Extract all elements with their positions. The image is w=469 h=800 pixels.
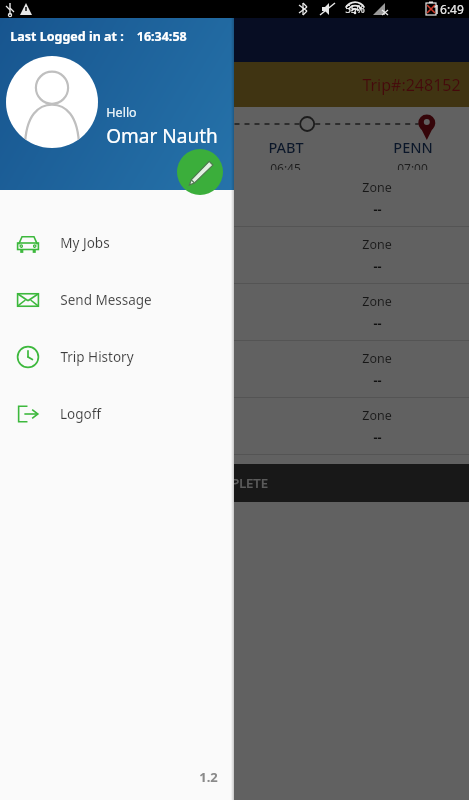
- button[interactable]: Trip History: [0, 328, 234, 385]
- staticText: 1.2: [199, 768, 218, 786]
- staticText: 55%: [345, 2, 365, 16]
- staticText: Actual Arrival Time: [87, 293, 198, 310]
- staticText: Zone: [362, 179, 392, 196]
- button[interactable]: Actual Arrival Time: [0, 227, 469, 284]
- button[interactable]: Actual Arrival Time: [0, 398, 469, 455]
- staticText: --: [373, 429, 382, 446]
- staticText: Zone: [362, 350, 392, 367]
- staticText: Zone: [362, 236, 392, 253]
- staticText: Omar Nauth: [106, 123, 218, 149]
- staticText: --: [373, 201, 382, 218]
- staticText: Actual Arrival Time: [87, 350, 198, 367]
- staticText: Actual Arrival Time: [87, 179, 198, 196]
- staticText: Send Message: [60, 291, 152, 309]
- staticText: Zone: [362, 293, 392, 310]
- staticText: PABT: [268, 137, 304, 157]
- staticText: Actual Arrival Time: [87, 236, 198, 253]
- staticText: --: [373, 372, 382, 389]
- button[interactable]: Send Message: [0, 271, 234, 328]
- staticText: Logoff: [60, 405, 101, 423]
- button[interactable]: Edit profile: [177, 149, 223, 195]
- button[interactable]: COMPLETE: [0, 464, 469, 502]
- button[interactable]: [0, 18, 469, 800]
- staticText: Current Job: [56, 29, 147, 52]
- button[interactable]: Logoff: [0, 385, 234, 442]
- staticText: Hello: [106, 104, 137, 121]
- button[interactable]: Open navigation drawer: [8, 20, 48, 60]
- staticText: My Jobs: [60, 234, 110, 252]
- button[interactable]: Actual Arrival Time: [0, 170, 469, 227]
- button[interactable]: Actual Arrival Time: [0, 341, 469, 398]
- staticText: Actual Arrival Time: [87, 407, 198, 424]
- staticText: PENN: [393, 137, 433, 157]
- staticText: LGP: [143, 137, 170, 157]
- staticText: --: [373, 258, 382, 275]
- staticText: 06:45: [270, 160, 301, 170]
- staticText: 16:49: [433, 1, 464, 17]
- staticText: Last Logged in at : 16:34:58: [10, 28, 187, 45]
- staticText: 07:00: [397, 160, 428, 170]
- staticText: Zone: [362, 407, 392, 424]
- staticText: --: [373, 315, 382, 332]
- staticText: Trip History: [60, 348, 134, 366]
- staticText: Trip#:248152: [362, 74, 461, 96]
- button[interactable]: Actual Arrival Time: [0, 284, 469, 341]
- staticText: COMPLETE: [201, 474, 268, 492]
- button[interactable]: Last Logged in at : 16:34:58: [0, 18, 234, 190]
- button[interactable]: My Jobs: [0, 214, 234, 271]
- staticText: JFK: [38, 137, 60, 157]
